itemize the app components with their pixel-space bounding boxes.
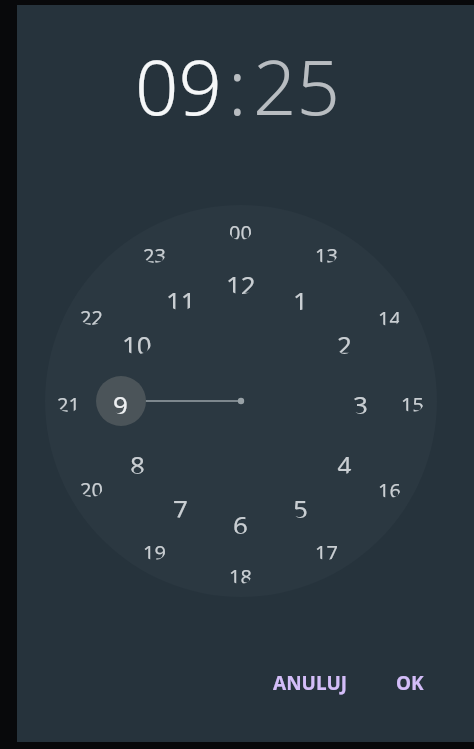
button[interactable]: 8 — [130, 447, 145, 474]
button[interactable]: 10 — [122, 327, 152, 354]
button[interactable]: 3 — [353, 387, 368, 414]
button[interactable]: 25 — [253, 34, 340, 138]
button[interactable]: 14 — [378, 305, 401, 326]
staticText: ANULUJ — [273, 670, 348, 696]
button[interactable]: OK — [386, 662, 434, 704]
staticText: 09 — [135, 34, 222, 138]
button[interactable]: 7 — [173, 491, 188, 518]
staticText: 4 — [337, 447, 352, 474]
staticText: 9 — [113, 387, 128, 414]
button[interactable]: ANULUJ — [263, 662, 358, 704]
staticText: 2 — [337, 327, 352, 354]
button[interactable]: 11 — [166, 283, 196, 310]
staticText: 1 — [293, 283, 308, 310]
staticText: 14 — [378, 305, 401, 326]
button[interactable]: 2 — [337, 327, 352, 354]
staticText: : — [228, 34, 247, 138]
button[interactable]: 6 — [233, 507, 248, 534]
staticText: 16 — [378, 477, 401, 498]
staticText: 19 — [143, 539, 166, 560]
staticText: 3 — [353, 387, 368, 414]
button[interactable]: 00 — [229, 219, 252, 240]
button[interactable]: 23 — [143, 242, 166, 263]
button[interactable]: 09 — [135, 34, 222, 138]
button[interactable]: 21 — [57, 391, 80, 412]
button[interactable]: 20 — [80, 476, 103, 497]
button[interactable]: 16 — [378, 477, 401, 498]
staticText: 15 — [401, 391, 424, 412]
staticText: 18 — [229, 563, 252, 584]
button[interactable]: 9 — [113, 387, 128, 414]
button[interactable]: 17 — [315, 539, 338, 560]
button[interactable]: 1 — [293, 283, 308, 310]
staticText: 6 — [233, 507, 248, 534]
staticText: 20 — [80, 476, 103, 497]
staticText: 12 — [226, 267, 256, 294]
button[interactable]: 19 — [143, 539, 166, 560]
button[interactable]: 12 — [226, 267, 256, 294]
staticText: 23 — [143, 242, 166, 263]
button[interactable]: 4 — [337, 447, 352, 474]
staticText: 13 — [315, 242, 338, 263]
staticText: 8 — [130, 447, 145, 474]
staticText: OK — [396, 670, 424, 696]
staticText: 17 — [315, 539, 338, 560]
staticText: 7 — [173, 491, 188, 518]
staticText: 5 — [293, 491, 308, 518]
button[interactable]: 13 — [315, 242, 338, 263]
staticText: 21 — [57, 391, 80, 412]
button[interactable]: 15 — [401, 391, 424, 412]
staticText: 22 — [80, 304, 103, 325]
staticText: 11 — [166, 283, 196, 310]
staticText: 00 — [229, 219, 252, 240]
button[interactable]: 5 — [293, 491, 308, 518]
button[interactable]: 22 — [80, 304, 103, 325]
staticText: 25 — [253, 34, 340, 138]
staticText: 10 — [122, 327, 152, 354]
button[interactable]: 18 — [229, 563, 252, 584]
